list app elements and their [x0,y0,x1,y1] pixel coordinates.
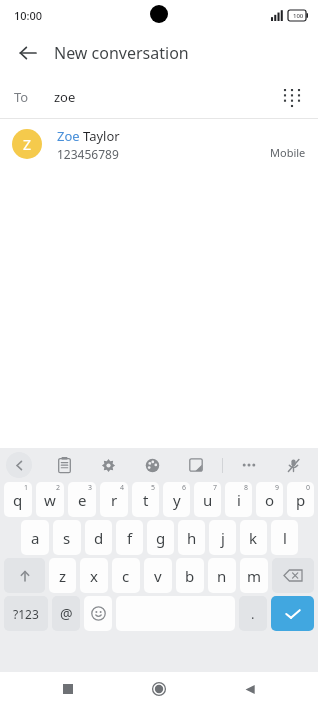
staticText: 5 [151,483,156,493]
button[interactable]: p [287,482,314,517]
button[interactable]: Shift [4,558,45,593]
button[interactable]: More options [236,452,262,478]
button[interactable]: Send [271,596,314,631]
button[interactable]: Settings [95,452,121,478]
button[interactable]: o [256,482,283,517]
button[interactable]: w [36,482,64,517]
staticText: x [90,566,98,586]
staticText: e [78,490,87,510]
button[interactable]: u [194,482,221,517]
button[interactable]: e [68,482,96,517]
staticText: i [237,490,241,510]
staticText: g [156,528,166,548]
staticText: b [185,566,195,586]
button[interactable]: h [178,520,205,555]
button[interactable]: z [49,558,76,593]
staticText: 1 [24,483,29,493]
button[interactable]: v [144,558,172,593]
button[interactable]: l [271,520,298,555]
button[interactable]: x [80,558,108,593]
staticText: l [283,528,287,548]
button[interactable]: @ [52,596,80,631]
staticText: 8 [244,483,249,493]
button[interactable]: Emoji [84,596,112,631]
button[interactable]: Backspace [272,558,314,593]
staticText: @ [60,604,73,623]
button[interactable]: . [239,596,267,631]
button[interactable]: Resize [183,452,209,478]
staticText: 6 [182,483,187,493]
button[interactable]: Clipboard [51,452,77,478]
staticText: Z [23,135,32,154]
staticText: y [173,490,181,510]
button[interactable]: t [132,482,159,517]
staticText: m [247,566,262,586]
staticText: d [94,528,104,548]
button[interactable]: r [100,482,128,517]
button[interactable]: Dial pad [272,78,310,116]
button[interactable]: ?123 [4,596,48,631]
button[interactable]: d [85,520,112,555]
staticText: p [296,490,306,510]
button[interactable]: g [147,520,174,555]
staticText: . [251,605,255,623]
button[interactable]: Recent apps [51,672,85,706]
button[interactable]: k [240,520,267,555]
button[interactable]: q [4,482,32,517]
button[interactable]: a [21,520,49,555]
staticText: z [59,566,67,586]
staticText: 7 [213,483,218,493]
staticText: zoe [54,88,76,106]
button[interactable]: Collapse [6,452,32,478]
staticText: q [13,490,23,510]
button[interactable]: f [116,520,143,555]
button[interactable]: y [163,482,190,517]
staticText: c [122,566,130,586]
staticText: f [127,528,133,548]
staticText: ?123 [13,606,39,622]
button[interactable]: m [240,558,268,593]
button[interactable]: n [208,558,236,593]
staticText: o [265,490,275,510]
staticText: 0 [306,483,311,493]
button[interactable]: b [176,558,204,593]
staticText: u [203,490,213,510]
staticText: 9 [275,483,280,493]
staticText: 100 [293,12,304,20]
staticText: s [63,528,71,548]
staticText: 4 [120,483,125,493]
staticText: k [249,528,258,548]
staticText: j [221,528,225,548]
button[interactable]: j [209,520,236,555]
staticText: t [143,490,149,510]
button[interactable]: Theme [139,452,165,478]
button[interactable]: Back [8,33,48,73]
staticText: h [187,528,197,548]
button[interactable]: Home [142,672,176,706]
staticText: To [14,88,29,106]
staticText: 2 [56,483,61,493]
staticText: n [217,566,227,586]
staticText: 3 [88,483,93,493]
button[interactable]: Back [233,672,267,706]
staticText: 123456789 [57,146,119,162]
staticText: r [111,490,118,510]
button[interactable]: c [112,558,140,593]
button[interactable]: Z [0,119,318,169]
staticText: Zoe Taylor [57,127,120,145]
button[interactable]: s [53,520,81,555]
staticText: v [154,566,162,586]
button[interactable]: i [225,482,252,517]
staticText: Mobile [270,145,306,160]
button[interactable]: Mute voice input [280,452,306,478]
staticText: a [31,528,40,548]
staticText: w [44,490,56,510]
staticText: 10:00 [14,8,43,23]
staticText: New conversation [54,42,189,64]
